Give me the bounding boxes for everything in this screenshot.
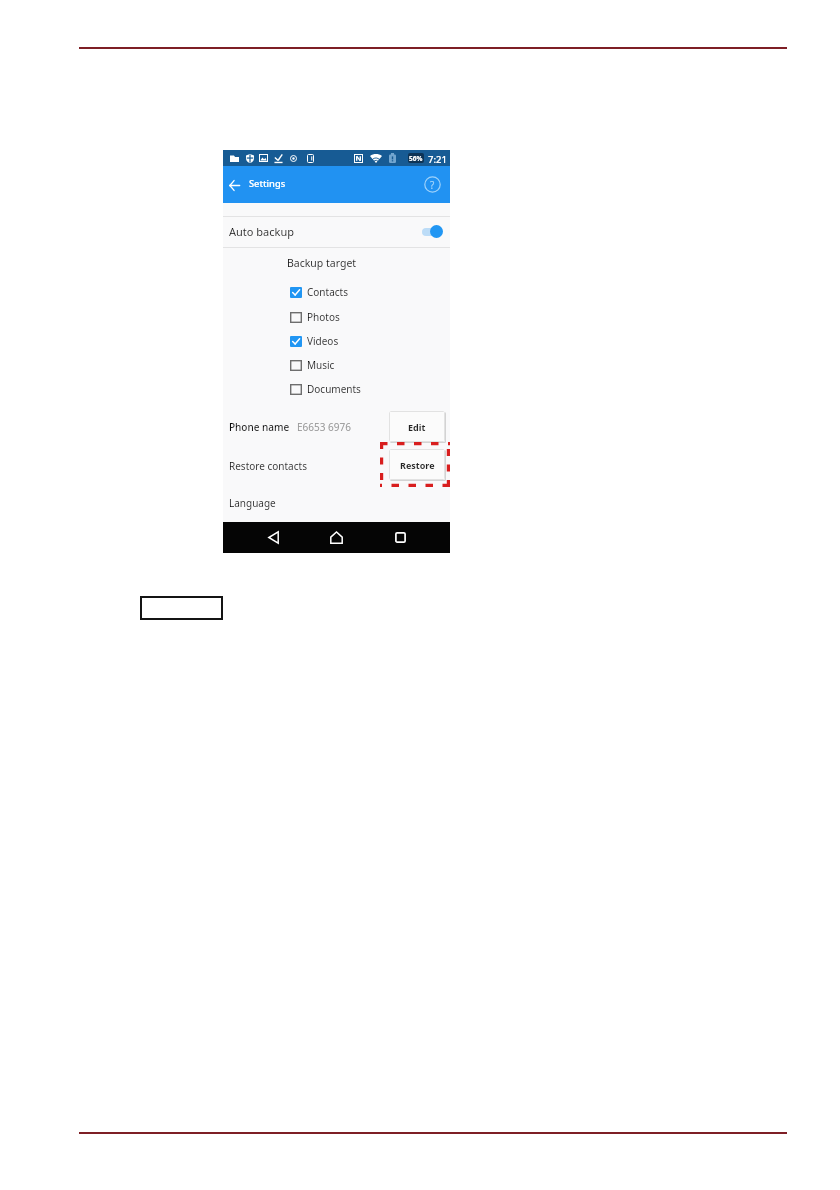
button[interactable]: Language <box>223 492 450 514</box>
button[interactable]: Back <box>222 173 246 197</box>
staticText: Documents <box>307 382 361 396</box>
staticText: Music <box>307 358 335 372</box>
staticText: Language <box>229 496 276 510</box>
button[interactable]: Restore <box>389 449 445 480</box>
staticText: Videos <box>307 334 339 348</box>
staticText: ? <box>430 178 435 192</box>
staticText: Restore contacts <box>229 459 307 473</box>
button[interactable]: Restore contacts <box>223 455 450 477</box>
button[interactable]: Phone name <box>223 416 450 438</box>
staticText: Photos <box>307 310 340 324</box>
button[interactable]: Music <box>290 356 395 374</box>
staticText: E6653 6976 <box>297 420 351 434</box>
button[interactable]: Documents <box>290 380 395 398</box>
staticText: Backup target <box>287 256 357 270</box>
staticText: 7:21 <box>428 153 447 166</box>
staticText: Restore <box>400 459 435 471</box>
staticText: Settings <box>249 177 286 190</box>
button[interactable]: Auto backup <box>223 216 450 247</box>
staticText: Contacts <box>307 285 348 299</box>
button[interactable]: Videos <box>290 332 395 350</box>
button[interactable]: Edit <box>389 411 445 442</box>
button[interactable]: Back <box>261 525 286 550</box>
staticText: 56% <box>409 154 423 163</box>
button[interactable]: Recents <box>388 525 413 550</box>
button[interactable]: Contacts <box>290 283 395 301</box>
staticText: Phone name <box>229 420 290 434</box>
button[interactable]: Help <box>420 172 444 196</box>
button[interactable]: Home <box>324 525 349 550</box>
staticText: Edit <box>408 421 426 433</box>
button[interactable]: Photos <box>290 308 395 326</box>
staticText: Auto backup <box>229 224 294 239</box>
